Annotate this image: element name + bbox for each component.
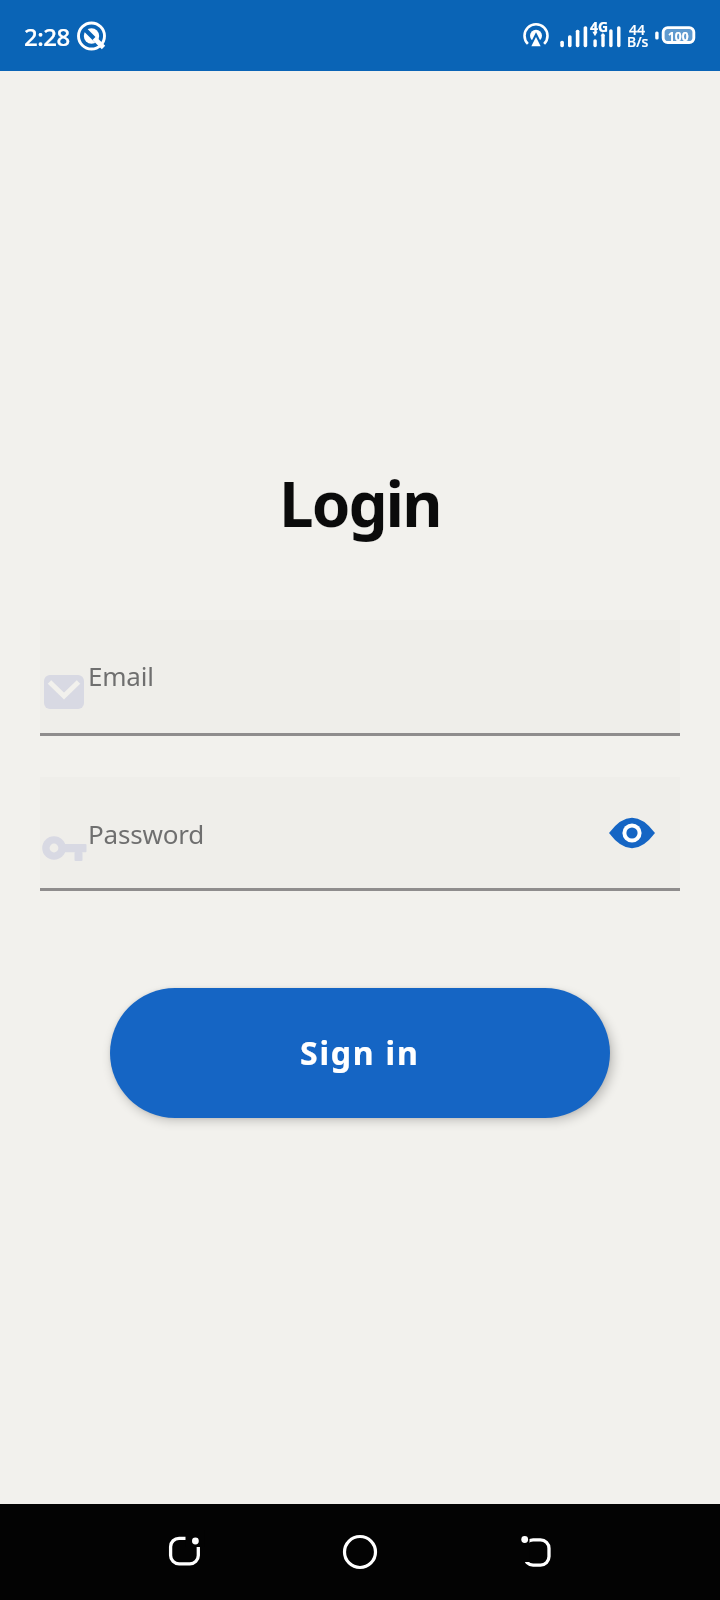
- staticText: Password: [88, 816, 204, 851]
- button[interactable]: [40, 620, 680, 733]
- staticText: Login: [279, 461, 441, 545]
- button[interactable]: [40, 777, 680, 890]
- button[interactable]: [470, 1510, 600, 1596]
- button[interactable]: [295, 1510, 425, 1596]
- staticText: 2:28: [24, 20, 70, 53]
- staticText: 4G: [590, 17, 609, 36]
- button[interactable]: [120, 1510, 250, 1596]
- staticText: 44: [629, 20, 646, 38]
- staticText: B/s: [627, 32, 649, 50]
- button[interactable]: Sign in: [110, 988, 610, 1118]
- staticText: Sign in: [300, 1031, 420, 1075]
- staticText: Email: [88, 658, 154, 693]
- staticText: 100: [668, 28, 689, 44]
